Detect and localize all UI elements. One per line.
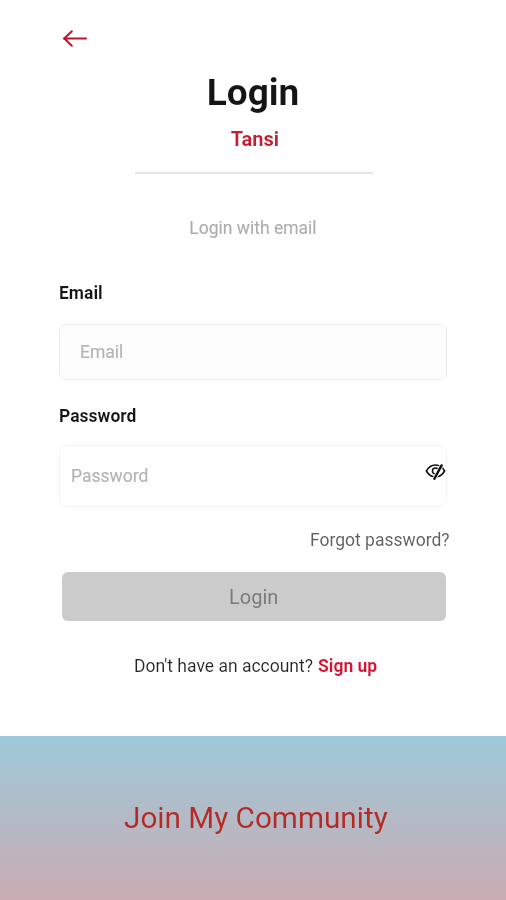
staticText: Login (229, 585, 279, 608)
staticText: Login with email (0, 218, 506, 239)
staticText: Email (59, 283, 103, 304)
button[interactable]: Password (59, 445, 447, 507)
staticText: Don't have an account? (134, 656, 318, 677)
button[interactable]: Email (59, 324, 447, 380)
button[interactable]: Forgot password? (310, 530, 450, 551)
staticText: Login (0, 71, 506, 114)
staticText: Join My Community (124, 800, 388, 835)
staticText: Password (71, 466, 149, 487)
staticText: Tansi (2, 127, 506, 150)
button[interactable]: Sign up (318, 656, 378, 677)
button[interactable]: Back (52, 16, 96, 60)
button[interactable]: Show password (420, 456, 447, 486)
button[interactable]: Login (62, 572, 446, 621)
button[interactable]: Join My Community (0, 736, 506, 900)
staticText: Password (59, 406, 137, 427)
staticText: Email (80, 342, 124, 363)
